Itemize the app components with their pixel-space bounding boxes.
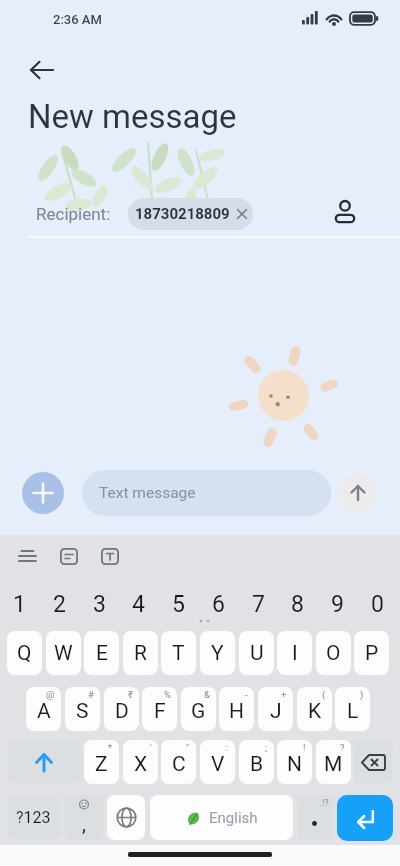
staticText: Z xyxy=(95,752,108,777)
button[interactable]: N xyxy=(277,740,312,784)
staticText: F xyxy=(154,699,166,724)
staticText: R xyxy=(134,641,147,666)
staticText: N xyxy=(287,752,302,777)
button[interactable]: W xyxy=(46,631,81,675)
button[interactable]: F xyxy=(142,687,177,731)
button[interactable]: Q xyxy=(7,631,42,675)
button[interactable]: G xyxy=(181,687,216,731)
button[interactable] xyxy=(354,740,393,784)
staticText: D xyxy=(115,699,129,724)
button[interactable] xyxy=(337,795,393,841)
button[interactable]: L xyxy=(335,687,370,731)
staticText: M xyxy=(324,752,343,777)
button[interactable]: D xyxy=(104,687,139,731)
button[interactable]: X xyxy=(123,740,158,784)
staticText: 1 xyxy=(13,591,26,618)
staticText: 2:36 AM xyxy=(53,12,102,27)
staticText: - xyxy=(245,689,248,700)
button[interactable] xyxy=(96,544,124,568)
button[interactable] xyxy=(22,472,64,514)
button[interactable]: 5 xyxy=(159,588,198,620)
button[interactable]: S xyxy=(65,687,100,731)
button[interactable]: T xyxy=(161,631,196,675)
staticText: I xyxy=(292,641,298,666)
staticText: @ xyxy=(46,689,55,700)
staticText: % xyxy=(164,689,171,700)
staticText: # xyxy=(88,689,94,700)
button[interactable]: Z xyxy=(84,740,119,784)
button[interactable] xyxy=(12,544,42,568)
button[interactable]: H xyxy=(219,687,254,731)
button[interactable]: Y xyxy=(200,631,235,675)
staticText: Y xyxy=(211,641,224,666)
button[interactable]: 3 xyxy=(80,588,119,620)
staticText: G xyxy=(191,699,206,724)
staticText: C xyxy=(172,752,186,777)
button[interactable]: J xyxy=(258,687,293,731)
button[interactable]: U xyxy=(239,631,274,675)
button[interactable] xyxy=(7,740,81,784)
staticText: P xyxy=(365,641,379,666)
staticText: ; xyxy=(265,742,268,753)
staticText: U xyxy=(250,641,264,666)
button[interactable]: K xyxy=(297,687,332,731)
button[interactable]: , xyxy=(65,795,103,840)
button[interactable]: A xyxy=(26,687,61,731)
button[interactable]: English xyxy=(150,795,293,840)
button[interactable]: B xyxy=(239,740,274,784)
staticText: Q xyxy=(17,641,32,666)
staticText: 4 xyxy=(132,591,145,618)
staticText: ( xyxy=(322,689,326,700)
staticText: ? xyxy=(340,742,345,753)
button[interactable]: .!? xyxy=(298,795,333,840)
button[interactable]: 7 xyxy=(239,588,278,620)
button[interactable]: 9 xyxy=(318,588,357,620)
staticText: " xyxy=(186,742,190,753)
staticText: B xyxy=(250,752,264,777)
button[interactable]: 1 xyxy=(0,588,39,620)
staticText: Text message xyxy=(99,484,196,502)
button[interactable] xyxy=(55,544,83,568)
button[interactable]: 18730218809 xyxy=(128,198,253,230)
button[interactable] xyxy=(107,795,145,840)
button[interactable] xyxy=(330,195,360,229)
button[interactable]: C xyxy=(161,740,196,784)
staticText: ! xyxy=(303,742,306,753)
staticText: X xyxy=(134,752,148,777)
staticText: 18730218809 xyxy=(135,205,230,223)
button[interactable]: O xyxy=(316,631,351,675)
button[interactable]: 6 xyxy=(199,588,238,620)
staticText: , xyxy=(82,812,86,835)
button[interactable]: M xyxy=(316,740,351,784)
staticText: O xyxy=(326,641,341,666)
button[interactable]: I xyxy=(277,631,312,675)
button[interactable]: E xyxy=(84,631,119,675)
staticText: 2 xyxy=(53,591,66,618)
button[interactable]: V xyxy=(200,740,235,784)
staticText: 7 xyxy=(252,591,265,618)
button[interactable]: P xyxy=(354,631,389,675)
button[interactable]: R xyxy=(123,631,158,675)
staticText: L xyxy=(347,699,359,724)
staticText: 5 xyxy=(172,591,185,618)
staticText: 9 xyxy=(331,591,344,618)
button[interactable] xyxy=(339,474,377,512)
staticText: New message xyxy=(28,97,237,136)
staticText: A xyxy=(37,699,51,724)
staticText: J xyxy=(270,699,282,724)
staticText: ' xyxy=(150,742,152,753)
staticText: 8 xyxy=(291,591,304,618)
button[interactable]: 0 xyxy=(358,588,397,620)
button[interactable]: 4 xyxy=(119,588,158,620)
button[interactable]: 8 xyxy=(278,588,317,620)
staticText: S xyxy=(76,699,89,724)
button[interactable] xyxy=(22,54,62,86)
button[interactable]: Text message xyxy=(82,470,331,516)
staticText: K xyxy=(308,699,322,724)
button[interactable]: ?123 xyxy=(7,795,60,840)
staticText: E xyxy=(96,641,108,666)
staticText: 6 xyxy=(212,591,225,618)
staticText: Recipient: xyxy=(36,204,111,224)
staticText: ?123 xyxy=(16,808,51,827)
button[interactable]: 2 xyxy=(40,588,79,620)
